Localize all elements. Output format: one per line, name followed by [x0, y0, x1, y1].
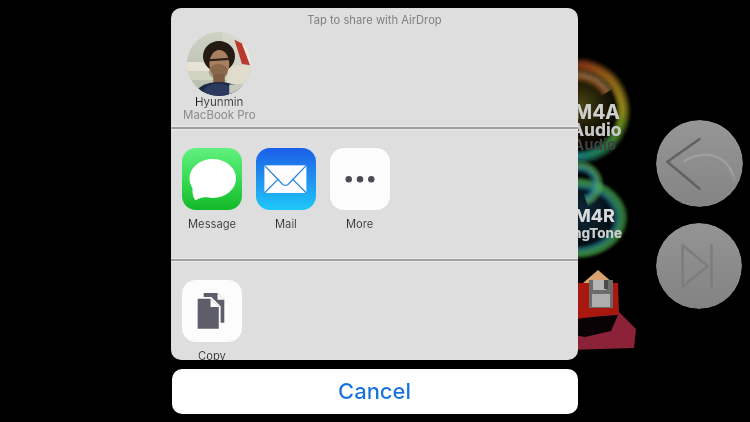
button[interactable]: Copy — [182, 280, 242, 360]
staticText: M4R — [574, 205, 615, 227]
staticText: Audio — [571, 119, 622, 140]
staticText: Hyunmin — [195, 95, 244, 109]
staticText: Copy — [198, 349, 226, 360]
staticText: Audio — [573, 135, 617, 153]
staticText: Cancel — [338, 378, 412, 405]
staticText: Tap to share with AirDrop — [171, 13, 578, 27]
button[interactable]: Cancel — [172, 369, 578, 414]
staticText: ngTone — [573, 225, 622, 241]
staticText: More — [346, 217, 374, 231]
staticText: Message — [188, 217, 237, 231]
staticText: Mail — [275, 217, 297, 231]
button[interactable]: Message — [182, 148, 242, 231]
button[interactable]: More — [330, 148, 390, 231]
staticText: MacBook Pro — [183, 108, 256, 122]
button[interactable]: Mail — [256, 148, 316, 231]
staticText: M4A — [574, 100, 620, 124]
button[interactable]: Hyunmin — [177, 32, 261, 124]
button[interactable]: Undo — [656, 120, 743, 207]
button[interactable]: Next track — [656, 223, 742, 309]
